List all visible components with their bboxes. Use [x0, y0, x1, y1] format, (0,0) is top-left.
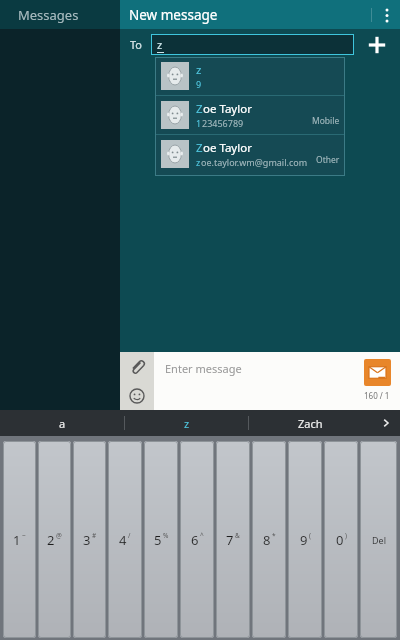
- staticText: #: [92, 531, 97, 540]
- staticText: 0: [336, 531, 344, 549]
- button[interactable]: Enter message: [154, 352, 354, 410]
- staticText: Enter message: [165, 361, 242, 376]
- button[interactable]: Z: [155, 96, 345, 134]
- staticText: New message: [129, 6, 218, 24]
- staticText: oe.taylor.wm@gmail.com: [201, 156, 308, 168]
- button[interactable]: a: [0, 410, 124, 436]
- staticText: (: [309, 531, 311, 540]
- staticText: To: [130, 37, 143, 52]
- button[interactable]: 6: [180, 441, 214, 638]
- button[interactable]: z: [125, 410, 248, 436]
- staticText: 23456789: [202, 117, 244, 129]
- staticText: z: [196, 62, 202, 78]
- staticText: Z: [196, 140, 203, 156]
- button[interactable]: Add recipient: [354, 29, 400, 60]
- staticText: 4: [119, 531, 127, 549]
- button[interactable]: 1: [3, 441, 36, 638]
- staticText: 2: [47, 531, 55, 549]
- staticText: z: [184, 416, 190, 431]
- button[interactable]: Del: [360, 441, 397, 638]
- staticText: 1: [196, 117, 202, 129]
- staticText: 5: [154, 531, 162, 549]
- button[interactable]: 2: [38, 441, 71, 638]
- staticText: Del: [372, 534, 386, 546]
- staticText: ): [345, 531, 347, 540]
- button[interactable]: 5: [144, 441, 178, 638]
- staticText: 9: [300, 531, 308, 549]
- staticText: Messages: [18, 6, 79, 24]
- staticText: ~: [22, 531, 26, 540]
- staticText: a: [59, 416, 66, 431]
- staticText: Other: [316, 154, 340, 166]
- staticText: z: [157, 37, 163, 52]
- staticText: 9: [196, 78, 202, 90]
- button[interactable]: Send message: [364, 359, 391, 386]
- button[interactable]: More options: [374, 0, 400, 29]
- button[interactable]: Messages: [0, 0, 120, 29]
- staticText: 1: [13, 531, 21, 549]
- button[interactable]: Insert emoticon: [122, 382, 152, 410]
- button[interactable]: 0: [324, 441, 358, 638]
- staticText: %: [163, 531, 169, 540]
- staticText: 7: [226, 531, 234, 549]
- staticText: /: [128, 531, 131, 540]
- button[interactable]: Z: [155, 135, 345, 173]
- button[interactable]: Zach: [249, 410, 372, 436]
- staticText: 3: [83, 531, 91, 549]
- button[interactable]: 9: [288, 441, 322, 638]
- button[interactable]: Attach: [122, 352, 152, 382]
- staticText: @: [56, 531, 62, 540]
- staticText: oe Taylor: [203, 101, 252, 117]
- staticText: Zach: [298, 416, 323, 431]
- staticText: 160 / 1: [364, 390, 390, 401]
- button[interactable]: z: [151, 34, 354, 55]
- button[interactable]: 8: [252, 441, 286, 638]
- staticText: z: [196, 156, 201, 168]
- staticText: Z: [196, 101, 203, 117]
- staticText: *: [272, 531, 276, 540]
- staticText: &: [235, 531, 240, 540]
- staticText: oe Taylor: [203, 140, 252, 156]
- button[interactable]: z: [155, 57, 345, 95]
- staticText: Mobile: [312, 115, 340, 127]
- button[interactable]: 3: [73, 441, 106, 638]
- staticText: ^: [200, 531, 204, 540]
- button[interactable]: 7: [216, 441, 250, 638]
- button[interactable]: More suggestions: [372, 410, 400, 436]
- staticText: 6: [191, 531, 199, 549]
- staticText: 8: [263, 531, 271, 549]
- button[interactable]: 4: [108, 441, 142, 638]
